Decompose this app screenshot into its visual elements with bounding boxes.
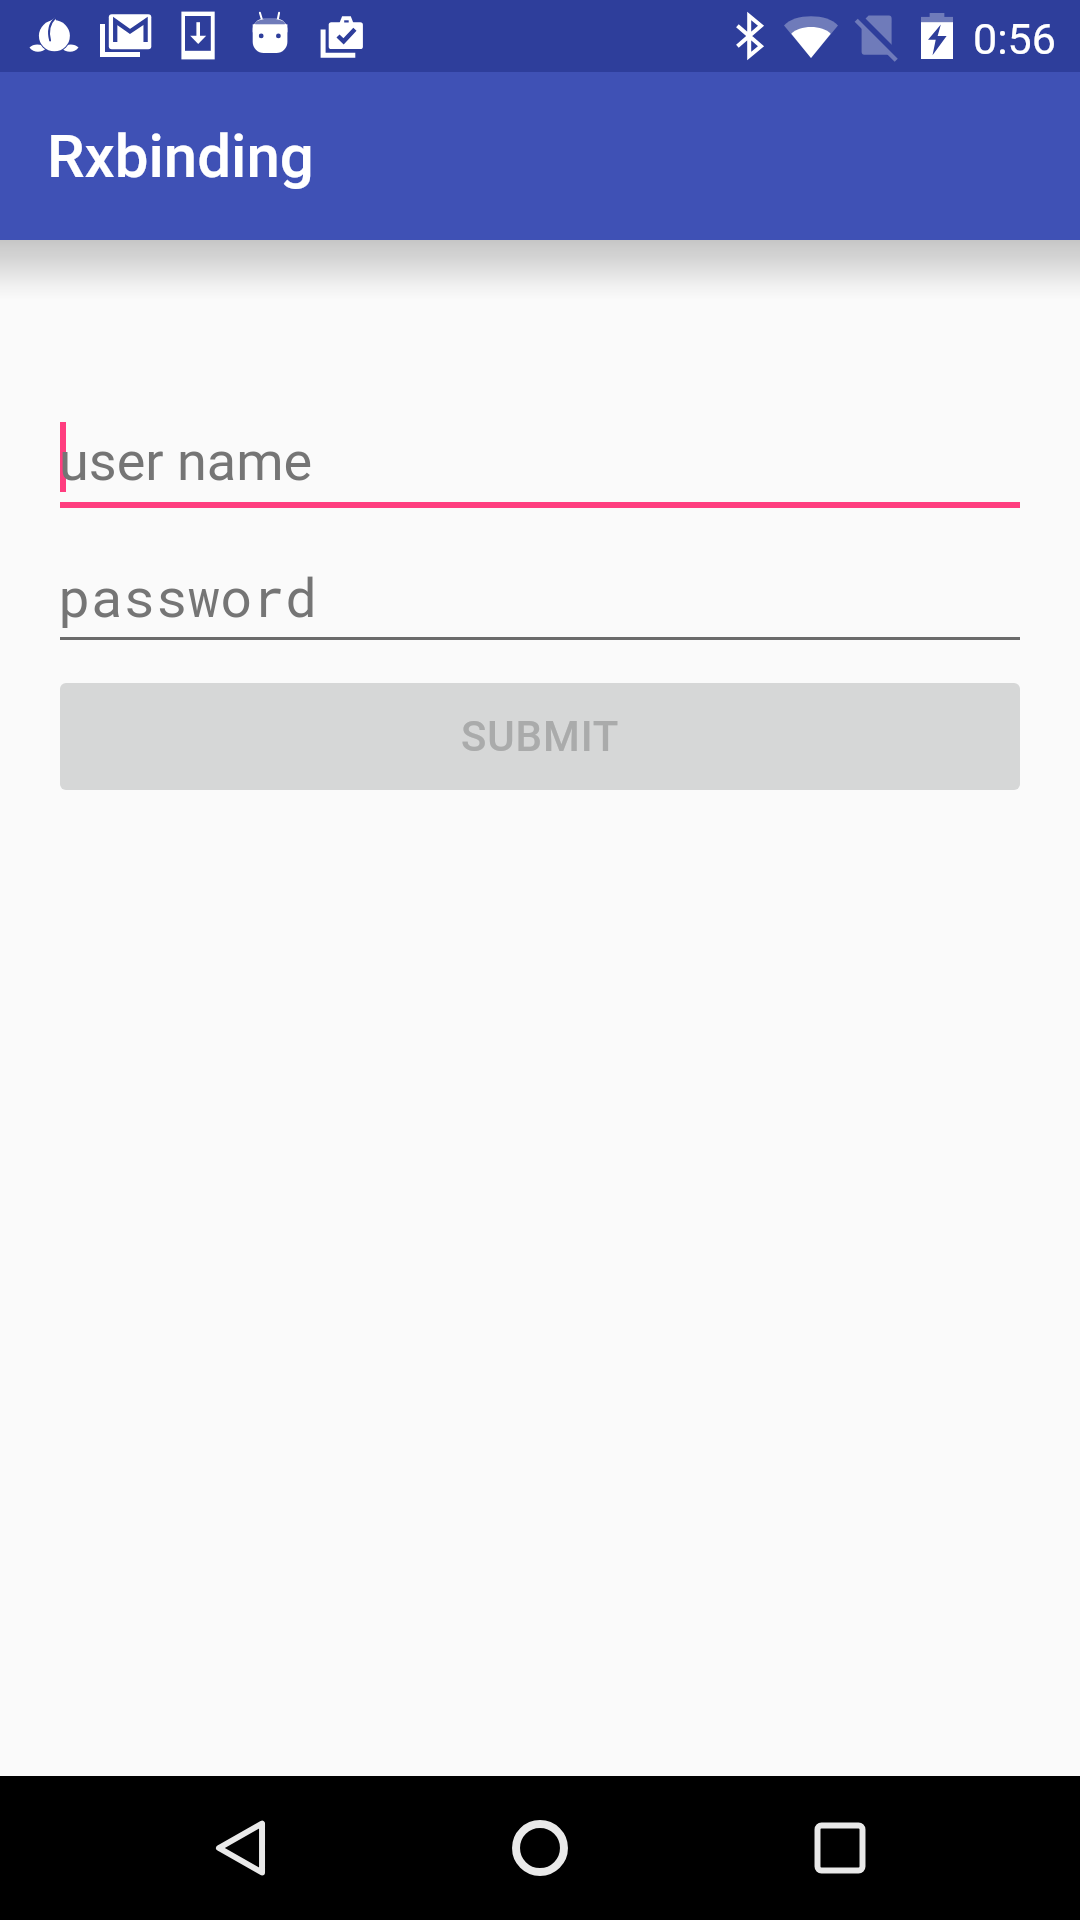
staticText: Rxbinding [47,121,314,191]
staticText: user name [59,430,313,493]
button[interactable]: Rxbinding [0,72,1080,240]
staticText: 0:56 [973,14,1056,64]
button[interactable]: user name [60,412,1020,508]
button[interactable]: SUBMIT [60,683,1020,790]
staticText: SUBMIT [461,712,620,761]
button[interactable]: Recent apps [768,1776,912,1920]
button[interactable]: Home [468,1776,612,1920]
button[interactable]: password [60,552,1020,640]
button[interactable]: Back [168,1776,312,1920]
staticText: password [58,560,318,631]
